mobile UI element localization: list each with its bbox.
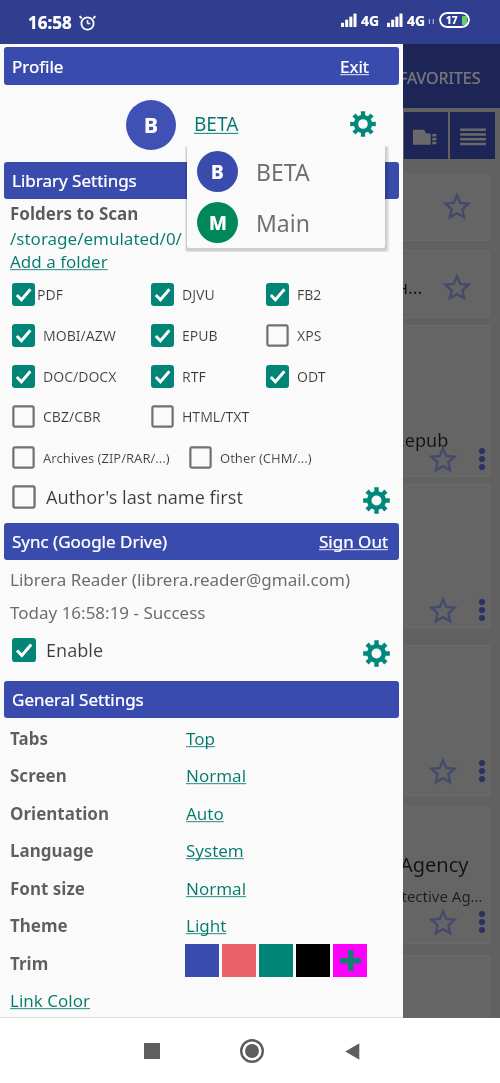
button[interactable] — [6, 806, 490, 944]
button[interactable]: Language — [0, 831, 403, 869]
staticText: Link Color — [10, 989, 91, 1012]
button[interactable] — [333, 944, 367, 977]
staticText: Screen — [10, 764, 67, 787]
button[interactable] — [6, 250, 490, 318]
button[interactable]: Orientation — [0, 794, 403, 832]
staticText: Top — [186, 727, 216, 750]
staticText: XPS — [297, 326, 322, 345]
staticText: 17 — [446, 13, 458, 27]
button[interactable]: ODT — [266, 362, 326, 391]
button[interactable]: B — [126, 100, 176, 150]
staticText: Normal — [186, 764, 247, 787]
staticText: B — [144, 111, 158, 140]
staticText: н… — [397, 275, 423, 300]
button[interactable]: Home — [230, 1029, 274, 1073]
staticText: RTF — [182, 367, 206, 386]
button[interactable]: HTML/TXT — [151, 402, 250, 431]
button[interactable]: General Settings — [4, 681, 399, 718]
button[interactable]: MOBI/AZW — [12, 321, 116, 350]
staticText: Exit — [340, 55, 369, 78]
staticText: Library Settings — [12, 169, 137, 192]
staticText: Today 16:58:19 - Success — [10, 601, 206, 624]
staticText: Main — [256, 207, 310, 238]
staticText: Agency — [400, 851, 469, 878]
button[interactable]: Profile — [4, 47, 399, 85]
staticText: Sign Out — [319, 530, 389, 553]
staticText: BETA — [256, 156, 310, 187]
staticText: HTML/TXT — [182, 407, 250, 426]
button[interactable]: Library Settings — [4, 162, 399, 199]
button[interactable] — [6, 955, 490, 1018]
button[interactable]: Sign Out — [319, 530, 389, 553]
button[interactable]: Author's last name first — [12, 482, 243, 512]
button[interactable] — [6, 645, 490, 796]
staticText: MOBI/AZW — [43, 326, 116, 345]
button[interactable]: Add a folder — [10, 250, 108, 273]
staticText: Orientation — [10, 802, 110, 825]
button[interactable]: Tabs — [0, 719, 403, 757]
staticText: Add a folder — [10, 250, 108, 273]
staticText: PDF — [37, 285, 63, 304]
button[interactable]: Screen — [0, 756, 403, 794]
button[interactable]: BETA — [194, 111, 239, 137]
staticText: Font size — [10, 877, 85, 900]
staticText: ODT — [297, 367, 326, 386]
staticText: Tabs — [10, 727, 48, 750]
staticText: .epub — [400, 428, 449, 453]
button[interactable]: PDF — [12, 280, 63, 309]
staticText: System — [186, 839, 244, 862]
staticText: 4G — [361, 11, 380, 30]
staticText: Trim — [10, 952, 49, 975]
staticText: DOC/DOCX — [43, 367, 117, 386]
staticText: Folders to Scan — [10, 202, 139, 225]
staticText: BETA — [194, 111, 239, 137]
button[interactable]: Profile settings — [350, 111, 376, 137]
button[interactable]: Theme — [0, 906, 403, 944]
button[interactable]: XPS — [266, 321, 322, 350]
button[interactable]: Sync (Google Drive) — [4, 523, 399, 560]
staticText: Auto — [186, 802, 224, 825]
staticText: Sync (Google Drive) — [12, 530, 168, 553]
button[interactable]: DJVU — [151, 280, 215, 309]
staticText: Language — [10, 839, 94, 862]
staticText: FB2 — [297, 285, 322, 304]
button[interactable]: Font size — [0, 869, 403, 907]
button[interactable]: FB2 — [266, 280, 322, 309]
staticText: EPUB — [182, 326, 218, 345]
button[interactable] — [6, 325, 490, 477]
staticText: FAVORITES — [399, 67, 481, 89]
button[interactable]: Enable — [12, 635, 104, 665]
button[interactable]: Exit — [340, 55, 369, 78]
button[interactable]: Recent apps — [132, 1031, 172, 1071]
button[interactable]: CBZ/CBR — [12, 402, 101, 431]
button[interactable]: Folders — [404, 112, 448, 159]
button[interactable]: Back — [332, 1031, 372, 1071]
button[interactable] — [6, 174, 490, 241]
button[interactable]: RTF — [151, 362, 206, 391]
staticText: Theme — [10, 914, 68, 937]
button[interactable]: Sync settings — [363, 640, 390, 667]
staticText: 16:58 — [28, 11, 72, 34]
staticText: General Settings — [12, 688, 144, 711]
button[interactable]: DOC/DOCX — [12, 362, 117, 391]
staticText: Normal — [186, 877, 247, 900]
staticText: DJVU — [182, 285, 215, 304]
button[interactable]: Other (CHM/...) — [189, 443, 312, 472]
staticText: Archives (ZIP/RAR/...) — [43, 449, 170, 467]
staticText: Enable — [46, 638, 104, 663]
button[interactable]: Archives (ZIP/RAR/...) — [12, 443, 170, 472]
button[interactable]: Link Color — [10, 989, 91, 1012]
button[interactable]: EPUB — [151, 321, 218, 350]
button[interactable]: Menu — [450, 112, 495, 159]
staticText: Author's last name first — [46, 485, 243, 510]
button[interactable] — [6, 484, 490, 628]
staticText: M — [209, 210, 227, 236]
button[interactable]: M — [187, 197, 385, 248]
button[interactable]: B — [187, 145, 385, 197]
button[interactable]: Author settings — [363, 487, 390, 514]
staticText: Profile — [12, 55, 64, 78]
